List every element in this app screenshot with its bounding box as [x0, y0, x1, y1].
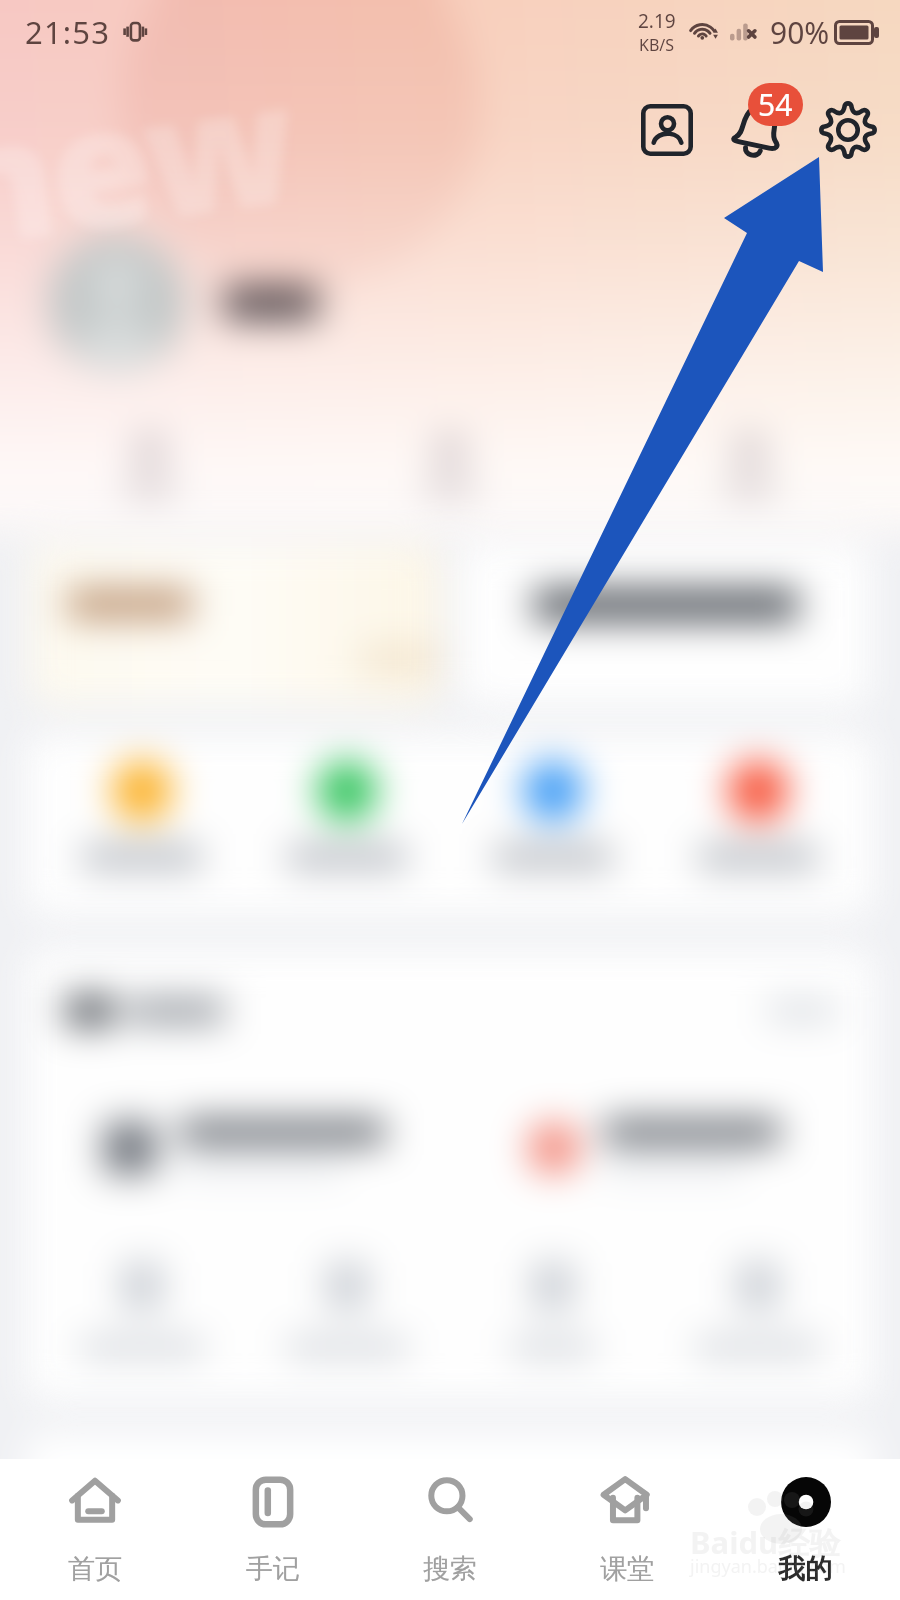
button[interactable]	[461, 545, 870, 705]
button[interactable]: 课堂	[545, 1476, 709, 1586]
button[interactable]	[48, 234, 186, 372]
staticText: 2.19	[638, 8, 676, 34]
button[interactable]	[300, 436, 600, 496]
staticText: 90%	[770, 12, 830, 53]
staticText: 21:53	[25, 11, 111, 53]
button[interactable]	[668, 1262, 848, 1356]
button[interactable]: 手记	[191, 1476, 355, 1586]
button[interactable]: Notifications	[726, 96, 790, 160]
button[interactable]: 搜索	[368, 1476, 532, 1586]
staticText: 搜索	[423, 1552, 477, 1586]
staticText: Baidu经验	[690, 1521, 841, 1563]
button[interactable]	[257, 761, 437, 869]
staticText: 课堂	[600, 1552, 654, 1586]
staticText: 首页	[68, 1552, 122, 1586]
button[interactable]: Settings	[814, 96, 882, 164]
staticText: 手记	[246, 1552, 300, 1586]
staticText: 我的	[778, 1552, 832, 1586]
button[interactable]	[257, 1262, 437, 1356]
button[interactable]	[463, 761, 643, 869]
staticText: new	[0, 25, 306, 297]
button[interactable]	[668, 761, 848, 869]
button[interactable]: 首页	[13, 1476, 177, 1586]
button[interactable]: 我的	[723, 1476, 887, 1586]
button[interactable]	[463, 1262, 643, 1356]
button[interactable]	[26, 1120, 450, 1176]
button[interactable]	[52, 761, 232, 869]
button[interactable]	[30, 545, 439, 705]
button[interactable]	[600, 436, 900, 496]
staticText: jingyan.baidu.com	[690, 1554, 846, 1579]
button[interactable]	[0, 436, 300, 496]
button[interactable]: Contacts	[635, 98, 699, 162]
button[interactable]	[52, 1262, 232, 1356]
staticText: 54	[758, 84, 793, 125]
button[interactable]	[450, 1120, 874, 1176]
staticText: KB/S	[639, 34, 675, 56]
